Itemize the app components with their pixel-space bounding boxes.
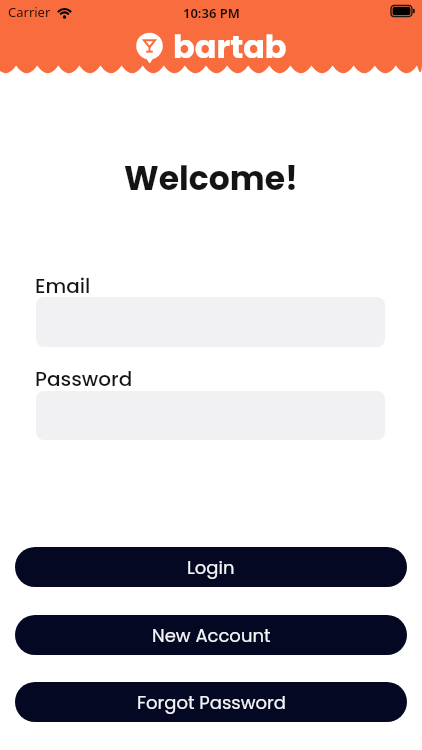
staticText: Email bbox=[35, 272, 91, 300]
staticText: Welcome! bbox=[0, 155, 422, 201]
button[interactable]: Forgot Password bbox=[15, 682, 407, 722]
staticText: Login bbox=[187, 555, 235, 580]
button[interactable]: New Account bbox=[15, 615, 407, 655]
staticText: New Account bbox=[152, 623, 271, 648]
staticText: Forgot Password bbox=[137, 690, 286, 715]
button[interactable]: Login bbox=[15, 547, 407, 587]
staticText: Password bbox=[35, 365, 133, 393]
staticText: Carrier bbox=[8, 3, 51, 21]
staticText: bartab bbox=[173, 24, 287, 69]
staticText: 10:36 PM bbox=[183, 4, 240, 22]
